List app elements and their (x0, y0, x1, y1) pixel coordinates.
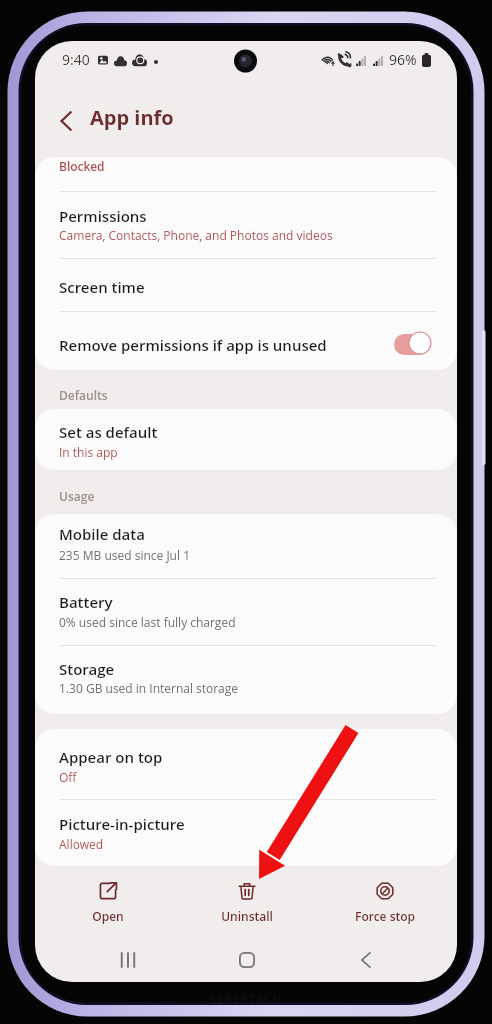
button[interactable] (35, 409, 457, 470)
staticText: 0% used since last fully charged (59, 614, 236, 630)
button[interactable]: Recents (98, 940, 158, 982)
staticText: Remove permissions if app is unused (59, 335, 327, 355)
button[interactable] (35, 578, 457, 645)
staticText: Force stop (355, 908, 415, 924)
staticText: Defaults (59, 387, 108, 403)
button[interactable]: Open (48, 872, 168, 934)
staticText: 235 MB used since Jul 1 (59, 547, 190, 563)
staticText: Permissions (59, 206, 147, 226)
staticText: Set as default (59, 422, 158, 442)
staticText: 96% (389, 50, 417, 69)
button[interactable]: Back (47, 101, 87, 141)
staticText: Appear on top (59, 747, 163, 767)
button[interactable] (35, 729, 457, 799)
button[interactable]: Uninstall (187, 872, 307, 934)
staticText: Open (92, 908, 124, 924)
button[interactable] (35, 645, 457, 714)
staticText: Mobile data (59, 524, 145, 544)
staticText: Battery (59, 592, 113, 612)
staticText: 9:40 (62, 50, 90, 69)
staticText: Usage (59, 488, 95, 504)
button[interactable] (35, 311, 457, 370)
staticText: Picture-in-picture (59, 814, 185, 834)
staticText: Camera, Contacts, Phone, and Photos and … (59, 227, 333, 243)
button[interactable]: Remove permissions if app is unused togg… (394, 334, 430, 355)
staticText: 1.30 GB used in Internal storage (59, 680, 238, 696)
staticText: Uninstall (221, 908, 273, 924)
button[interactable] (35, 514, 457, 578)
staticText: App info (90, 104, 174, 131)
button[interactable]: Back (336, 940, 396, 982)
staticText: Blocked (59, 158, 105, 174)
button[interactable]: Home (217, 940, 277, 982)
button[interactable]: Force stop (325, 872, 445, 934)
staticText: In this app (59, 444, 118, 460)
staticText: Storage (59, 659, 115, 679)
staticText: SEBERTECH (210, 991, 283, 1006)
button[interactable] (35, 799, 457, 866)
button[interactable] (35, 258, 457, 311)
staticText: Allowed (59, 836, 104, 852)
staticText: Screen time (59, 277, 145, 297)
staticText: Off (59, 769, 77, 785)
button[interactable] (35, 191, 457, 258)
